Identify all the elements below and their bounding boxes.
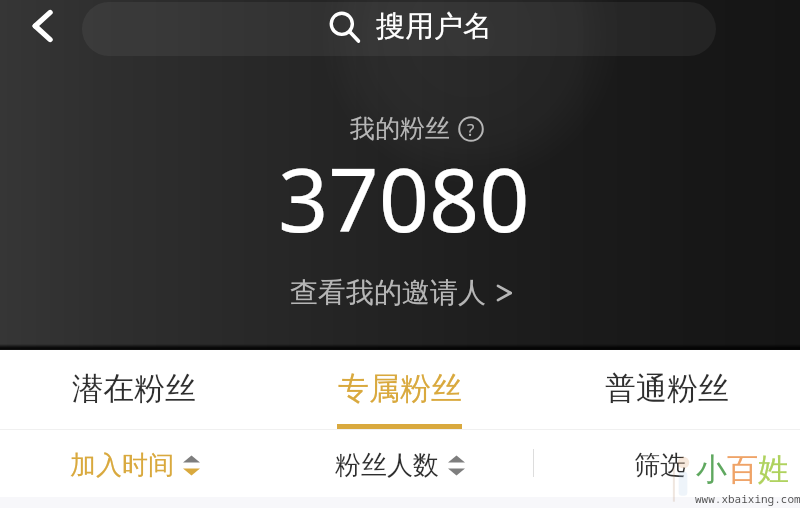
button[interactable]: 我的粉丝 (350, 113, 484, 144)
staticText: 百 (727, 450, 758, 489)
staticText: 普通粉丝 (605, 369, 729, 408)
button[interactable]: 筛选 (533, 430, 800, 497)
staticText: 我的粉丝 (350, 113, 450, 144)
button[interactable]: 潜在粉丝 (0, 350, 266, 429)
button[interactable]: 粉丝人数 (266, 430, 533, 497)
button[interactable]: 查看我的邀请人 (290, 275, 512, 310)
staticText: www.xbaixing.com (695, 491, 800, 506)
staticText: 搜用户名 (376, 8, 492, 45)
staticText: 筛选 (634, 449, 686, 482)
staticText: 小 (696, 450, 727, 489)
staticText: 加入时间 (70, 449, 174, 482)
button[interactable]: 搜用户名 (82, 2, 716, 56)
button[interactable]: Back (14, 0, 70, 54)
button[interactable]: 专属粉丝 (266, 350, 533, 429)
staticText: 37080 (278, 138, 530, 258)
staticText: 潜在粉丝 (72, 369, 196, 408)
staticText: ? (467, 118, 475, 141)
button[interactable]: 加入时间 (0, 430, 266, 497)
staticText: 查看我的邀请人 (290, 275, 486, 310)
button[interactable]: 普通粉丝 (533, 350, 800, 429)
staticText: 粉丝人数 (335, 449, 439, 482)
staticText: 姓 (758, 450, 789, 489)
staticText: 专属粉丝 (338, 369, 462, 408)
